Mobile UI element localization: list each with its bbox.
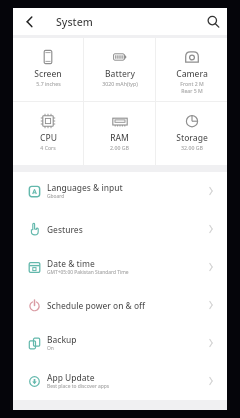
staticText: Front 2 M (180, 80, 204, 87)
staticText: Rear 5 M (181, 87, 203, 94)
staticText: Languages & input (47, 182, 123, 193)
staticText: On (47, 345, 54, 352)
button[interactable]: App Update (13, 362, 227, 400)
staticText: 2.00 GB (110, 144, 129, 151)
button[interactable]: Camera (156, 38, 227, 101)
staticText: CPU (40, 132, 57, 144)
staticText: 32.00 GB (181, 144, 203, 151)
staticText: Schedule power on & off (47, 300, 146, 311)
button[interactable]: Schedule power on & off (13, 286, 227, 324)
staticText: Battery (105, 68, 135, 80)
staticText: 3020 mAh(typ) (102, 80, 138, 87)
button[interactable]: Back (13, 8, 45, 35)
staticText: Best place to discover apps (47, 383, 110, 390)
staticText: Backup (47, 334, 77, 345)
button[interactable]: Search (199, 8, 227, 35)
button[interactable]: Gestures (13, 210, 227, 248)
staticText: System (56, 15, 93, 29)
button[interactable]: Battery (84, 38, 155, 101)
button[interactable]: Backup (13, 324, 227, 362)
button[interactable]: CPU (13, 102, 83, 165)
button[interactable]: Languages & input (13, 172, 227, 210)
staticText: App Update (47, 372, 95, 383)
staticText: Camera (176, 68, 208, 80)
staticText: Date & time (47, 258, 95, 269)
button[interactable]: Screen (13, 38, 83, 101)
staticText: Screen (34, 68, 62, 80)
staticText: Storage (176, 132, 208, 144)
button[interactable]: RAM (84, 102, 155, 165)
staticText: RAM (110, 132, 129, 144)
button[interactable]: Storage (156, 102, 227, 165)
staticText: 5.7 inches (36, 80, 61, 87)
staticText: Gestures (47, 224, 83, 235)
staticText: Gboard (47, 193, 65, 200)
staticText: GMT+05:00 Pakistan Standard Time (47, 269, 129, 276)
staticText: 4 Cors (40, 144, 56, 151)
button[interactable]: Date & time (13, 248, 227, 286)
